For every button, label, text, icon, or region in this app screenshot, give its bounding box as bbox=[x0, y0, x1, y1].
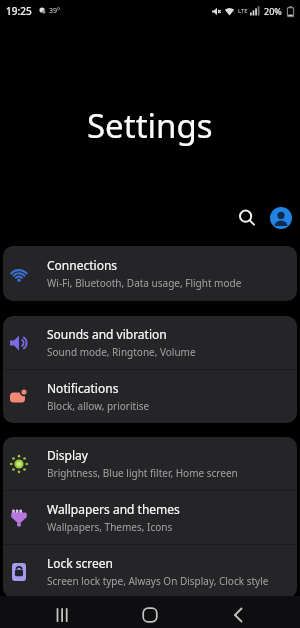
staticText: 20% bbox=[264, 5, 282, 17]
button[interactable]: Sounds and vibration bbox=[3, 316, 297, 369]
staticText: Display bbox=[47, 447, 88, 463]
staticText: Wallpapers and themes bbox=[47, 501, 180, 517]
button[interactable] bbox=[237, 208, 257, 228]
staticText: Brightness, Blue light filter, Home scre… bbox=[47, 466, 238, 480]
staticText: Wi-Fi, Bluetooth, Data usage, Flight mod… bbox=[47, 276, 242, 290]
button[interactable]: Display bbox=[3, 437, 297, 490]
button[interactable] bbox=[122, 602, 178, 628]
button[interactable]: Wallpapers and themes bbox=[3, 491, 297, 544]
button[interactable]: Connections bbox=[3, 246, 297, 301]
button[interactable] bbox=[34, 602, 90, 628]
staticText: Sounds and vibration bbox=[47, 326, 167, 342]
staticText: 39° bbox=[49, 6, 61, 16]
button[interactable] bbox=[210, 602, 266, 628]
staticText: Lock screen bbox=[47, 555, 114, 571]
staticText: Block, allow, prioritise bbox=[47, 399, 150, 413]
staticText: Screen lock type, Always On Display, Clo… bbox=[47, 574, 269, 588]
staticText: Settings bbox=[87, 103, 213, 148]
staticText: Sound mode, Ringtone, Volume bbox=[47, 345, 196, 359]
staticText: LTE bbox=[238, 7, 248, 15]
staticText: Connections bbox=[47, 257, 118, 273]
staticText: Wallpapers, Themes, Icons bbox=[47, 520, 173, 534]
button[interactable] bbox=[270, 207, 292, 229]
staticText: 19:25 bbox=[6, 4, 32, 18]
button[interactable]: Lock screen bbox=[3, 545, 297, 598]
button[interactable]: Notifications bbox=[3, 370, 297, 423]
staticText: Notifications bbox=[47, 380, 119, 396]
